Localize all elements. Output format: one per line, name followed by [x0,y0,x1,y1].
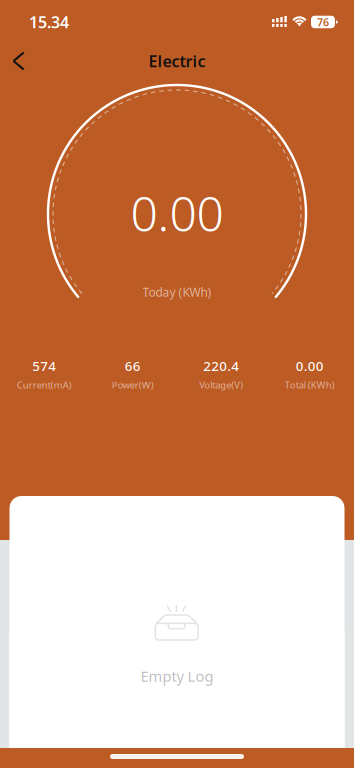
staticText: 574 [32,357,56,375]
staticText: 15.34 [29,11,69,33]
staticText: Voltage(V) [199,379,243,391]
staticText: 220.4 [203,357,239,375]
staticText: Today (KWh) [142,284,211,300]
staticText: Empty Log [140,666,213,686]
staticText: Power(W) [112,379,154,391]
staticText: 76 [317,15,329,29]
staticText: Total (KWh) [285,379,335,391]
staticText: 0.00 [296,357,324,375]
staticText: 0.00 [130,181,223,245]
staticText: Electric [148,50,205,72]
staticText: 66 [125,357,141,375]
staticText: Current(mA) [17,379,72,391]
button[interactable]: Back [4,44,34,78]
